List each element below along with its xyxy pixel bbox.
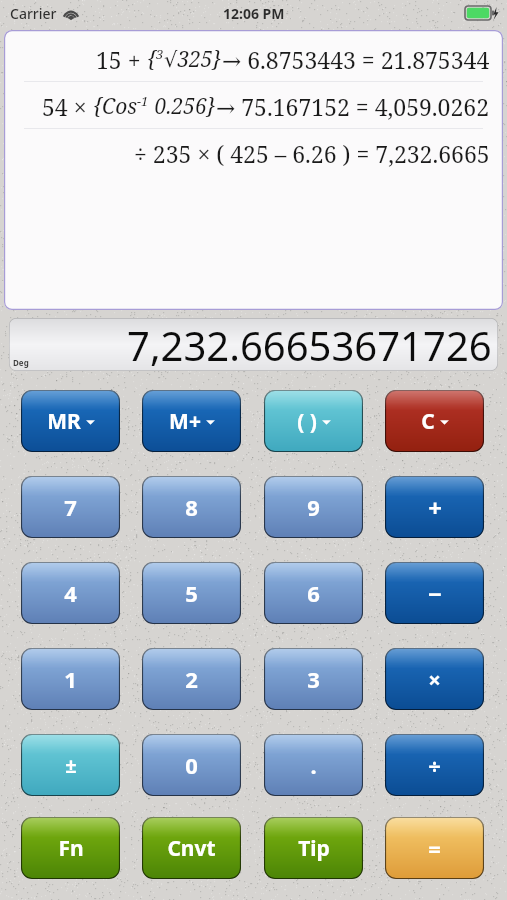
staticText: 3 bbox=[156, 45, 164, 63]
staticText: √325} bbox=[164, 45, 222, 74]
staticText: Tip bbox=[298, 834, 330, 863]
staticText: Cnvt bbox=[167, 834, 216, 863]
button[interactable]: 0 bbox=[142, 734, 241, 796]
staticText: 0.256} bbox=[149, 92, 216, 121]
button[interactable]: Tip bbox=[264, 817, 363, 879]
staticText: MR bbox=[47, 407, 81, 436]
staticText: 7,232.66653671726 bbox=[127, 318, 492, 371]
staticText: × bbox=[428, 664, 441, 694]
button[interactable]: Decimal point bbox=[264, 734, 363, 796]
staticText: C bbox=[421, 407, 435, 436]
staticText: 2 bbox=[185, 664, 198, 694]
button[interactable]: 4 bbox=[21, 562, 120, 624]
button[interactable]: Multiply bbox=[385, 648, 484, 710]
staticText: = bbox=[428, 833, 441, 863]
staticText: Deg bbox=[13, 357, 29, 368]
button[interactable]: Fn bbox=[21, 817, 120, 879]
staticText: 3 bbox=[307, 664, 320, 694]
button[interactable]: 9 bbox=[264, 476, 363, 538]
staticText: 9 bbox=[307, 492, 320, 522]
staticText: { bbox=[147, 45, 156, 74]
staticText: 5 bbox=[185, 578, 198, 608]
staticText: 0 bbox=[185, 750, 198, 780]
button[interactable]: Equals bbox=[385, 817, 484, 879]
button[interactable]: MR bbox=[21, 390, 120, 452]
staticText: 54 × bbox=[42, 91, 93, 122]
button[interactable]: Cnvt bbox=[142, 817, 241, 879]
staticText: 15 + bbox=[96, 44, 147, 75]
button[interactable]: Minus bbox=[385, 562, 484, 624]
button[interactable]: 8 bbox=[142, 476, 241, 538]
button[interactable]: Plus minus bbox=[21, 734, 120, 796]
button[interactable]: 6 bbox=[264, 562, 363, 624]
staticText: ± bbox=[65, 752, 77, 779]
staticText: Carrier bbox=[10, 4, 57, 23]
button[interactable]: ( ) bbox=[264, 390, 363, 452]
staticText: {Cos bbox=[93, 92, 137, 121]
staticText: 1 bbox=[64, 664, 77, 694]
staticText: . bbox=[310, 750, 317, 780]
staticText: 8 bbox=[185, 492, 198, 522]
staticText: -1 bbox=[137, 92, 149, 110]
staticText: → 6.8753443 = 21.875344 bbox=[222, 44, 490, 75]
button[interactable]: 7 bbox=[21, 476, 120, 538]
button[interactable]: C bbox=[385, 390, 484, 452]
button[interactable]: 1 bbox=[21, 648, 120, 710]
button[interactable]: Divide bbox=[385, 734, 484, 796]
staticText: 4 bbox=[64, 578, 77, 608]
staticText: 6 bbox=[307, 578, 320, 608]
button[interactable]: Deg bbox=[9, 318, 498, 371]
staticText: 7 bbox=[64, 492, 77, 522]
staticText: ( ) bbox=[297, 407, 317, 436]
staticText: + bbox=[428, 491, 442, 524]
staticText: ÷ bbox=[428, 750, 441, 780]
button[interactable]: 5 bbox=[142, 562, 241, 624]
staticText: → 75.167152 = 4,059.0262 bbox=[216, 91, 490, 122]
staticText: 12:06 PM bbox=[223, 4, 285, 23]
staticText: M+ bbox=[169, 407, 201, 436]
staticText: Fn bbox=[58, 834, 84, 863]
button[interactable]: Plus bbox=[385, 476, 484, 538]
staticText: − bbox=[428, 577, 442, 610]
button[interactable]: 2 bbox=[142, 648, 241, 710]
staticText: ÷ 235 × ( 425 – 6.26 ) = 7,232.6665 bbox=[134, 138, 490, 169]
button[interactable]: 15 + bbox=[4, 30, 503, 310]
button[interactable]: M+ bbox=[142, 390, 241, 452]
button[interactable]: 3 bbox=[264, 648, 363, 710]
